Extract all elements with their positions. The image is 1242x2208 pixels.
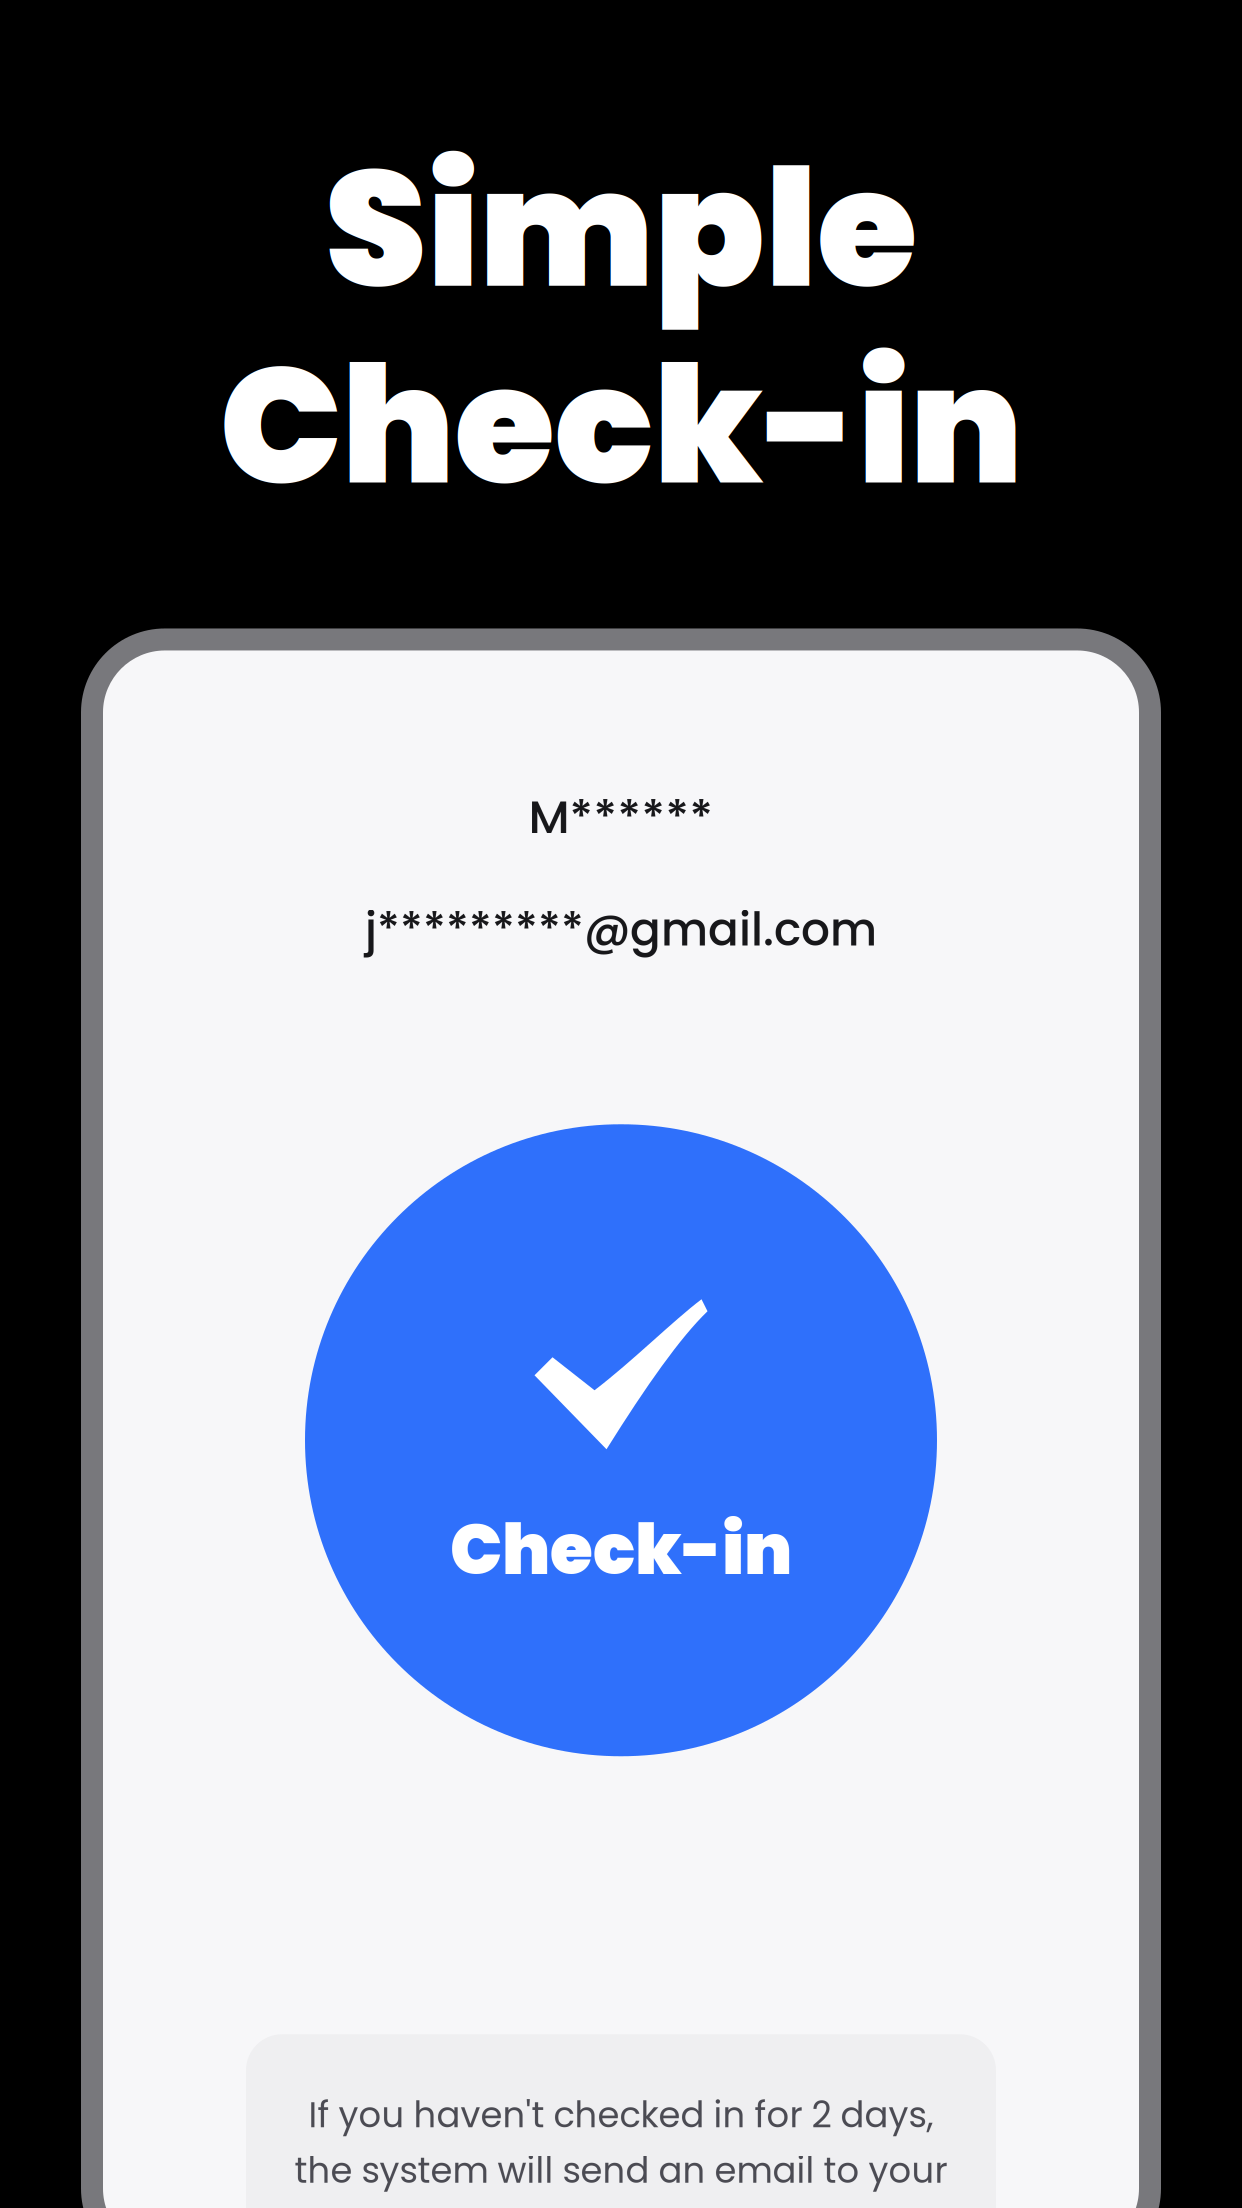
staticText: Check-in [450, 1501, 792, 1598]
button[interactable]: Check-in [305, 1124, 937, 1756]
staticText: j*********@gmail.com [365, 898, 877, 961]
staticText: If you haven't checked in for 2 days, [308, 2090, 933, 2140]
staticText: Check-in [219, 312, 1022, 539]
staticText: Simple [325, 115, 917, 343]
staticText: the system will send an email to your [294, 2146, 947, 2195]
staticText: M****** [528, 784, 713, 850]
